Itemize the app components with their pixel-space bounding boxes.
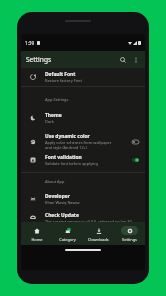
button[interactable]: Font validation toggle xyxy=(130,154,141,165)
staticText: Category xyxy=(59,237,76,242)
button[interactable]: More options xyxy=(129,53,142,66)
button[interactable]: Use dynamic color xyxy=(21,129,145,154)
staticText: Font validation xyxy=(45,154,82,161)
staticText: About App xyxy=(45,179,65,184)
staticText: Validate font before applying xyxy=(45,161,98,166)
staticText: App-Settings xyxy=(45,97,69,102)
button[interactable]: Settings xyxy=(114,222,145,245)
staticText: The current version is v3.0.0, released … xyxy=(45,219,132,224)
button[interactable]: Check Update xyxy=(21,208,145,227)
button[interactable]: Search xyxy=(116,53,129,66)
button[interactable]: Developer xyxy=(21,189,145,208)
staticText: Downloads xyxy=(88,237,109,242)
staticText: 1:39 xyxy=(25,40,35,46)
staticText: Dark xyxy=(45,119,54,124)
button[interactable]: Font validation xyxy=(21,149,145,170)
button[interactable]: Use dynamic color toggle xyxy=(130,136,141,147)
button[interactable]: Default Font xyxy=(21,68,145,86)
staticText: Default Font xyxy=(45,71,76,78)
staticText: Khan Wasiq Nawaz xyxy=(45,200,80,205)
staticText: Settings xyxy=(122,237,137,242)
button[interactable]: Home xyxy=(21,222,52,245)
staticText: Developer xyxy=(45,193,70,200)
staticText: Restore factory Font xyxy=(45,78,82,83)
button[interactable]: Category xyxy=(52,222,83,245)
staticText: Settings xyxy=(26,55,52,64)
staticText: Home xyxy=(31,237,43,242)
staticText: Check Update xyxy=(45,212,79,219)
button[interactable]: Downloads xyxy=(83,222,114,245)
staticText: Use dynamic color xyxy=(45,133,90,140)
staticText: Apply color schemes from wallpaper and s… xyxy=(45,140,112,150)
staticText: Theme xyxy=(45,112,62,119)
button[interactable]: Theme xyxy=(21,108,145,128)
